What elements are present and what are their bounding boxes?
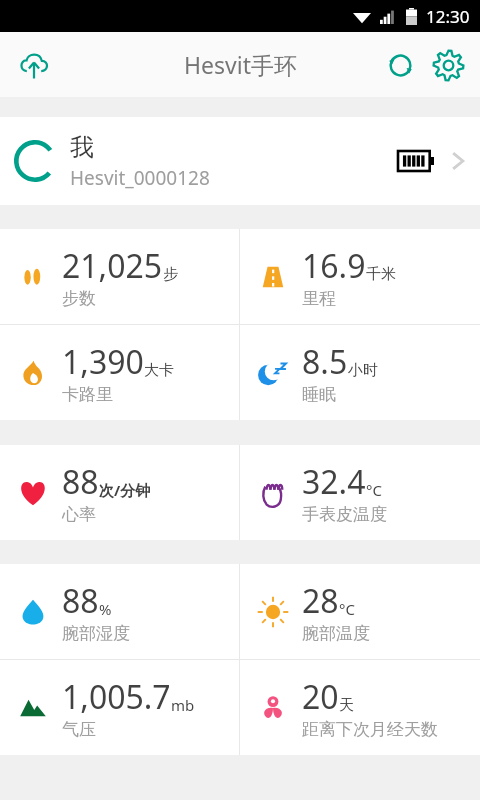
staticText: 腕部温度 [302,623,370,644]
button[interactable]: 20 [240,660,480,755]
staticText: % [99,599,112,619]
staticText: 20 [302,675,339,719]
staticText: 手表皮温度 [302,504,387,525]
staticText: 1,005.7 [62,675,171,719]
staticText: 88 [62,460,99,504]
staticText: 21,025 [62,244,163,288]
staticText: 1,390 [62,340,144,384]
staticText: 千米 [366,265,396,284]
staticText: 次/分钟 [99,480,151,500]
button[interactable]: 21,025 [0,229,239,324]
staticText: 我 [70,132,94,162]
staticText: °C [366,480,382,500]
staticText: 里程 [302,288,336,309]
button[interactable]: 88 [0,564,239,659]
button[interactable]: 28 [240,564,480,659]
staticText: 距离下次月经天数 [302,719,438,740]
staticText: Hesvit_0000128 [70,165,210,191]
staticText: 大卡 [144,361,174,380]
button[interactable]: Upload to cloud [10,41,58,89]
button[interactable]: 8.5 [240,325,480,420]
button[interactable]: Settings [424,41,472,89]
staticText: 步 [163,265,178,284]
button[interactable]: 1,005.7 [0,660,239,755]
staticText: Hesvit手环 [184,49,297,80]
button[interactable]: 我 [0,117,480,205]
button[interactable]: 88 [0,445,239,540]
button[interactable]: 1,390 [0,325,239,420]
staticText: °C [339,599,355,619]
staticText: 卡路里 [62,384,113,405]
staticText: 气压 [62,719,96,740]
staticText: 28 [302,579,339,623]
staticText: 腕部湿度 [62,623,130,644]
button[interactable]: 32.4 [240,445,480,540]
staticText: 16.9 [302,244,366,288]
button[interactable]: Sync [376,41,424,89]
staticText: 32.4 [302,460,366,504]
staticText: 天 [339,696,354,715]
staticText: mb [171,695,195,715]
staticText: 8.5 [302,340,348,384]
staticText: 88 [62,579,99,623]
staticText: 12:30 [426,5,470,28]
staticText: 小时 [348,361,378,380]
button[interactable]: 16.9 [240,229,480,324]
staticText: 步数 [62,288,96,309]
staticText: 心率 [62,504,96,525]
staticText: 睡眠 [302,384,336,405]
